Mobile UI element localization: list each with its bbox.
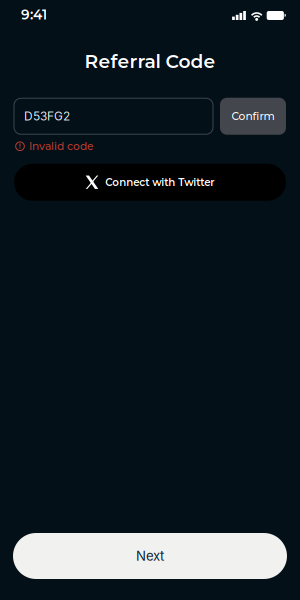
button[interactable]: D53FG2 — [14, 98, 213, 134]
staticText: Referral Code — [84, 50, 215, 73]
staticText: Next — [136, 548, 164, 564]
button[interactable]: Connect with Twitter — [14, 164, 286, 201]
staticText: 9:41 — [21, 6, 47, 23]
staticText: Connect with Twitter — [105, 176, 214, 188]
button[interactable]: Next — [13, 533, 287, 579]
button[interactable]: Confirm — [220, 98, 286, 135]
staticText: Confirm — [231, 110, 274, 123]
staticText: Invalid code — [29, 140, 94, 153]
staticText: D53FG2 — [24, 109, 70, 123]
